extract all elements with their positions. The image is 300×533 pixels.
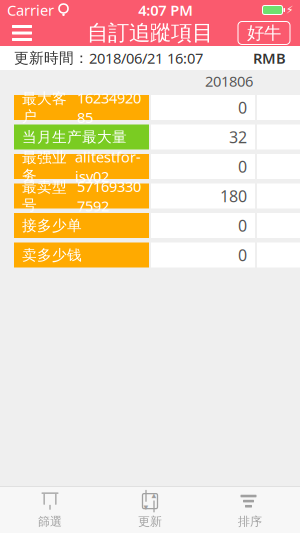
staticText: 最强业务 xyxy=(22,148,67,184)
staticText: 0 xyxy=(238,215,247,236)
staticText: 0 xyxy=(238,156,247,177)
button[interactable]: 最卖型号 xyxy=(0,183,300,208)
staticText: alitestforisv02 xyxy=(75,147,141,186)
staticText: 最卖型号 xyxy=(22,178,67,214)
button[interactable]: 好牛 xyxy=(238,21,290,44)
staticText: Carrier xyxy=(7,0,54,20)
staticText: 最大客户 xyxy=(22,89,67,125)
staticText: 接多少单 xyxy=(22,216,82,234)
button[interactable]: 最大客户 xyxy=(0,95,300,120)
button[interactable]: 最强业务 xyxy=(0,154,300,179)
staticText: RMB xyxy=(253,48,286,68)
staticText: ⚡︎ xyxy=(286,4,293,16)
staticText: 当月生产最大量 xyxy=(22,128,127,146)
staticText: 0 xyxy=(238,97,247,118)
button[interactable]: 接多少单 xyxy=(0,213,300,238)
staticText: 更新時間： xyxy=(14,49,89,67)
button[interactable]: Menu xyxy=(0,16,44,50)
staticText: 4:07 PM xyxy=(138,0,193,20)
staticText: 自訂追蹤項目 xyxy=(87,20,213,46)
staticText: 排序 xyxy=(238,514,262,529)
staticText: ▴ xyxy=(151,490,156,500)
button[interactable]: ▾ xyxy=(100,487,200,533)
button[interactable]: 篩選 xyxy=(0,487,100,533)
button[interactable]: 排序 xyxy=(200,487,300,533)
button[interactable]: 卖多少钱 xyxy=(0,242,300,267)
button[interactable]: 当月生产最大量 xyxy=(0,124,300,149)
staticText: 2018/06/21 16:07 xyxy=(89,48,203,68)
staticText: 0 xyxy=(238,244,247,266)
staticText: 571693307592 xyxy=(77,176,141,215)
staticText: 篩選 xyxy=(38,514,62,529)
staticText: 201806 xyxy=(205,71,253,91)
staticText: 1623492085 xyxy=(77,88,141,127)
staticText: 32 xyxy=(229,126,247,148)
staticText: 好牛 xyxy=(247,22,281,44)
staticText: 卖多少钱 xyxy=(22,246,82,264)
staticText: 更新 xyxy=(138,514,162,529)
staticText: 180 xyxy=(220,185,247,207)
staticText: ▾ xyxy=(143,502,148,512)
